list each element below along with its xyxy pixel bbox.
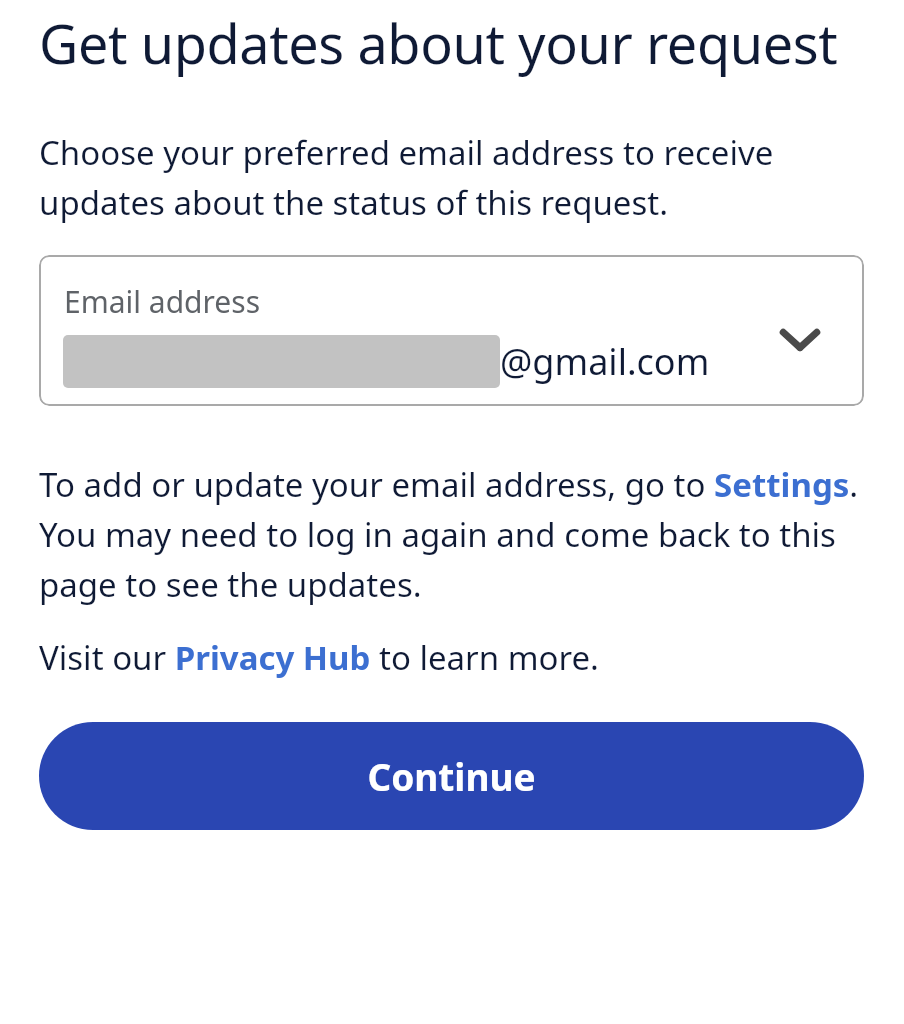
staticText: Continue [367,751,536,801]
button[interactable]: Email address, select [39,255,864,406]
staticText: Get updates about your request [39,6,864,80]
other: Expand email address list [774,313,826,365]
staticText: To add or update your email address, go … [39,462,864,607]
staticText: @gmail.com [500,337,710,386]
staticText: Email address [64,281,261,322]
button[interactable]: Visit our Privacy Hub to learn more. [39,635,864,680]
button[interactable]: Continue [39,722,864,830]
staticText: Choose your preferred email address to r… [39,130,864,225]
